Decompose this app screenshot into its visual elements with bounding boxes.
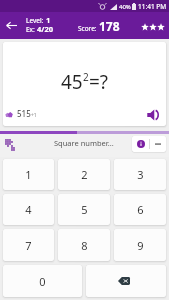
button[interactable]: 3 <box>114 159 166 190</box>
staticText: +1 <box>31 112 37 119</box>
button[interactable]: 0 <box>3 265 82 297</box>
staticText: 1 <box>46 15 51 25</box>
staticText: 4 <box>25 202 32 217</box>
staticText: Level: <box>26 16 46 25</box>
staticText: 9 <box>137 238 144 253</box>
staticText: Score: <box>78 24 99 33</box>
staticText: 5 <box>81 202 88 217</box>
staticText: 2 <box>81 167 88 182</box>
button[interactable]: Info <box>132 136 149 152</box>
staticText: 3 <box>137 167 144 182</box>
staticText: 7 <box>25 238 32 253</box>
button[interactable]: Play sound <box>144 105 164 125</box>
button[interactable]: More <box>150 136 166 152</box>
staticText: 1 <box>25 167 32 182</box>
staticText: =? <box>89 69 109 95</box>
staticText: 4/20 <box>37 24 53 34</box>
staticText: 6 <box>137 202 144 217</box>
staticText: 0 <box>39 274 46 289</box>
button[interactable]: Change layout <box>2 136 20 154</box>
button[interactable]: 6 <box>114 194 166 225</box>
button[interactable]: 5 <box>58 194 110 225</box>
staticText: 2 <box>83 70 89 84</box>
button[interactable]: 1 <box>3 159 54 190</box>
button[interactable]: 2 <box>58 159 110 190</box>
staticText: 178 <box>99 18 120 34</box>
button[interactable]: 7 <box>3 229 54 261</box>
button[interactable]: 8 <box>58 229 110 261</box>
staticText: Ex: <box>26 25 37 34</box>
staticText: 515 <box>17 108 31 119</box>
button[interactable]: Back <box>0 12 22 39</box>
staticText: 8 <box>81 238 88 253</box>
button[interactable]: Backspace <box>86 265 166 297</box>
staticText: 11:41 PM <box>138 2 167 11</box>
staticText: Square number... <box>54 138 114 148</box>
staticText: 40% <box>119 3 131 11</box>
button[interactable]: 9 <box>114 229 166 261</box>
button[interactable]: 4 <box>3 194 54 225</box>
staticText: 45 <box>61 69 83 95</box>
